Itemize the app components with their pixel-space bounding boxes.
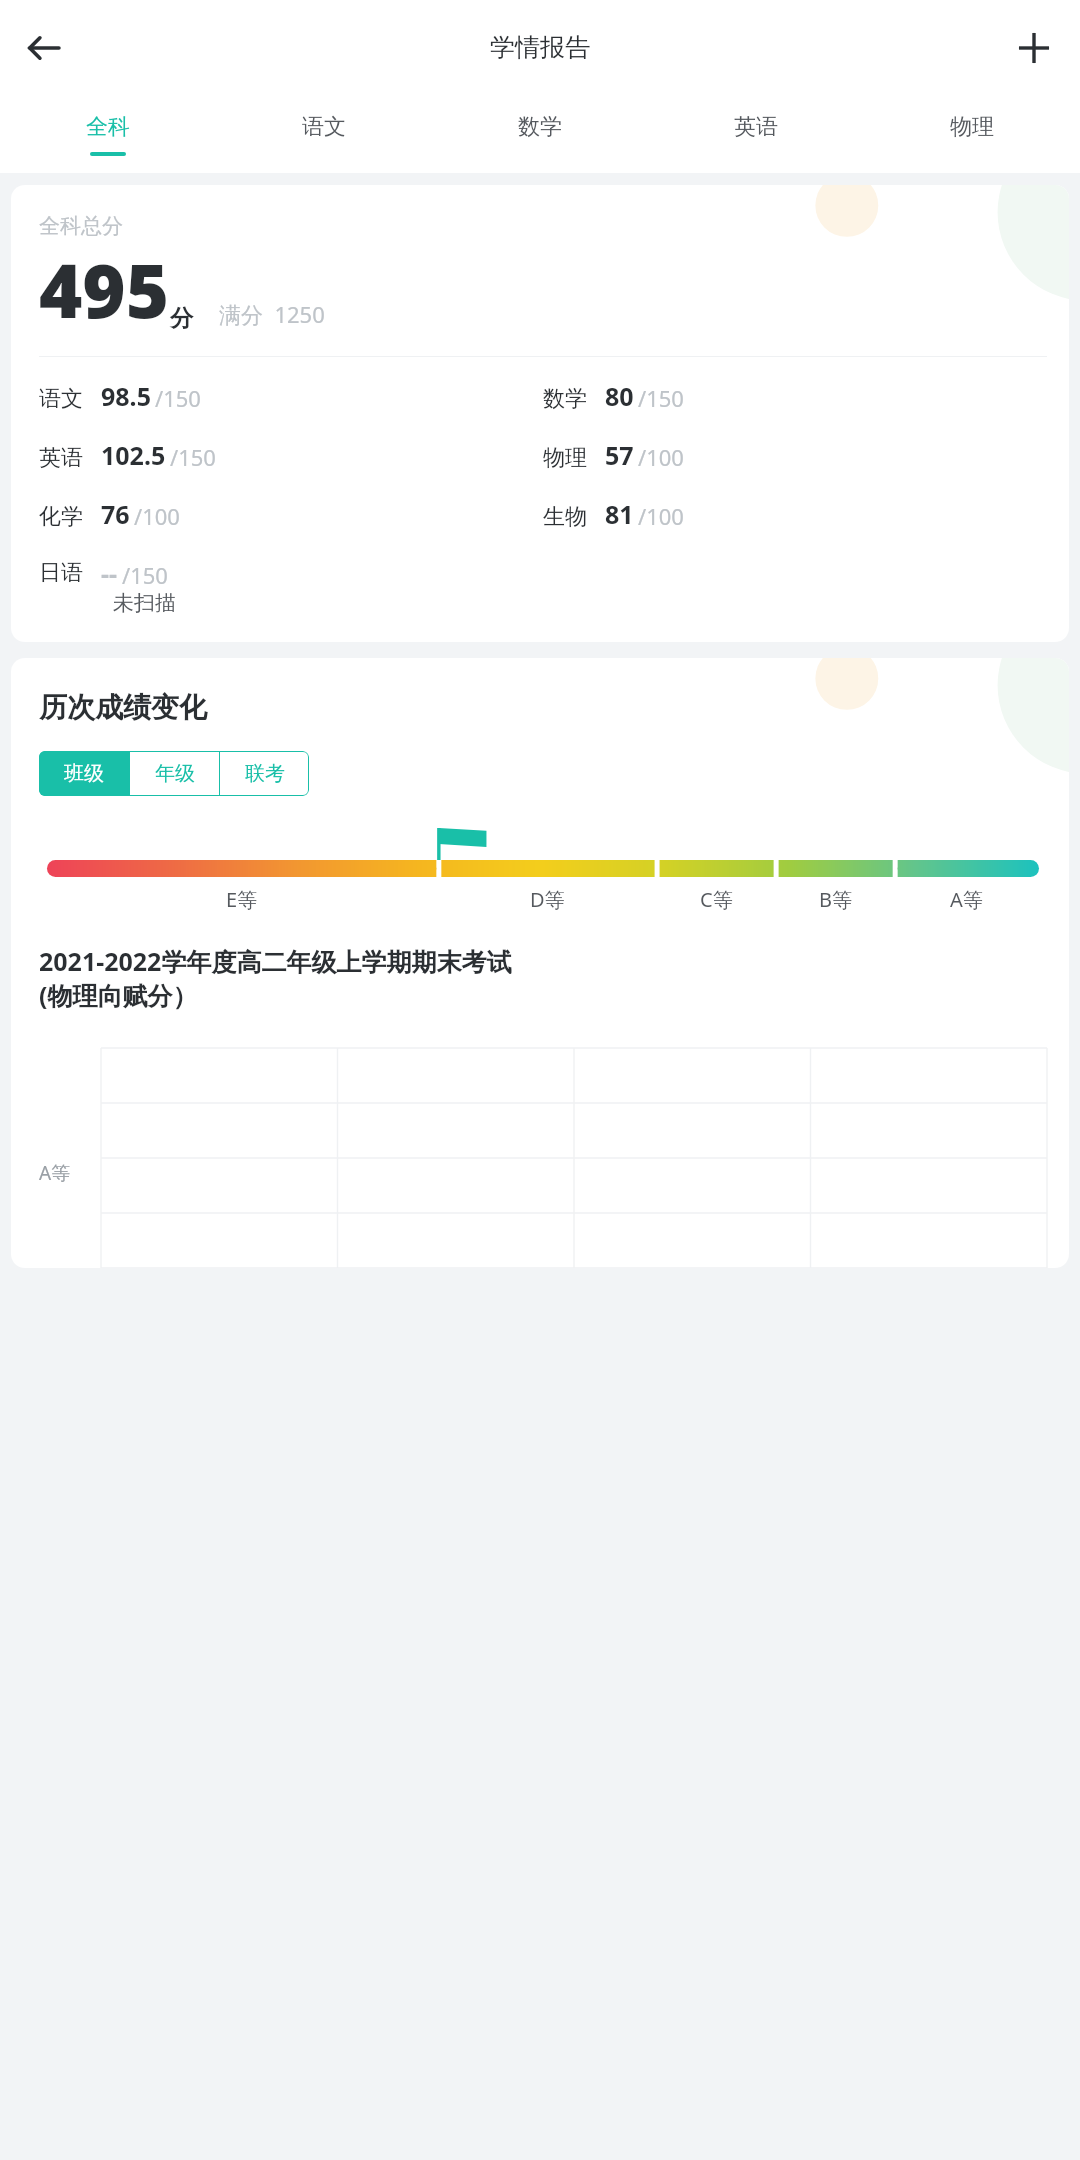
- staticText: 物理: [543, 444, 587, 472]
- staticText: A等: [950, 886, 983, 913]
- staticText: /150: [122, 560, 168, 590]
- staticText: B等: [819, 886, 852, 913]
- button[interactable]: 数学: [432, 95, 648, 173]
- button[interactable]: 语文: [216, 95, 432, 173]
- button[interactable]: 班级: [39, 751, 129, 796]
- staticText: /100: [134, 501, 180, 531]
- staticText: 495: [39, 239, 170, 340]
- staticText: 数学: [518, 113, 562, 141]
- staticText: 英语: [39, 444, 83, 472]
- staticText: 语文: [39, 385, 83, 413]
- staticText: D等: [530, 886, 565, 913]
- staticText: 学情报告: [490, 32, 590, 63]
- staticText: /150: [638, 383, 684, 413]
- staticText: 全科: [86, 113, 130, 141]
- button[interactable]: 物理: [864, 95, 1080, 173]
- staticText: 全科总分: [39, 213, 123, 239]
- staticText: 98.5: [101, 379, 151, 413]
- staticText: 满分 1250: [219, 299, 325, 329]
- staticText: --: [101, 556, 118, 590]
- button[interactable]: Back: [12, 16, 76, 80]
- staticText: 化学: [39, 503, 83, 531]
- button[interactable]: 英语: [648, 95, 864, 173]
- button[interactable]: 年级: [130, 751, 219, 796]
- staticText: 57: [605, 438, 634, 472]
- staticText: 未扫描: [113, 590, 176, 616]
- staticText: 年级: [155, 761, 195, 786]
- staticText: (物理向赋分）: [39, 978, 198, 1012]
- staticText: /150: [170, 442, 216, 472]
- staticText: 语文: [302, 113, 346, 141]
- button[interactable]: 联考: [220, 751, 309, 796]
- staticText: 数学: [543, 385, 587, 413]
- staticText: 81: [605, 497, 634, 531]
- staticText: 2021-2022学年度高二年级上学期期末考试: [39, 944, 512, 978]
- staticText: E等: [226, 886, 258, 913]
- staticText: 联考: [245, 761, 285, 786]
- staticText: /100: [638, 442, 684, 472]
- staticText: 英语: [734, 113, 778, 141]
- staticText: 生物: [543, 503, 587, 531]
- staticText: 班级: [64, 761, 104, 786]
- staticText: 物理: [950, 113, 994, 141]
- staticText: C等: [700, 886, 733, 913]
- staticText: 历次成绩变化: [39, 690, 207, 725]
- button[interactable]: 全科: [0, 95, 216, 173]
- staticText: 80: [605, 379, 634, 413]
- staticText: 日语: [39, 559, 83, 587]
- staticText: 分: [170, 304, 193, 333]
- staticText: /150: [155, 383, 201, 413]
- staticText: 102.5: [101, 438, 166, 472]
- button[interactable]: Add: [1002, 16, 1066, 80]
- staticText: A等: [39, 1160, 71, 1186]
- staticText: /100: [638, 501, 684, 531]
- staticText: 76: [101, 497, 130, 531]
